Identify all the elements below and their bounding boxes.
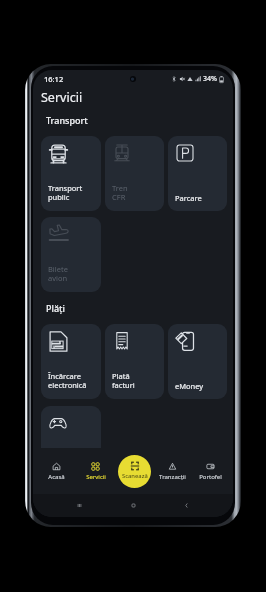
button[interactable]: Plată facturi <box>105 324 164 399</box>
button[interactable]: Transport public <box>41 136 101 211</box>
staticText: Plăți <box>46 302 65 314</box>
staticText: 16:12 <box>44 74 64 84</box>
staticText: Scanează <box>122 472 148 480</box>
staticText: Tren CFR <box>112 183 128 203</box>
button[interactable]: Home <box>126 498 141 513</box>
staticText: Bilete avion <box>48 264 68 284</box>
button[interactable]: Jocuri <box>41 406 101 481</box>
button[interactable]: eMoney <box>168 324 227 399</box>
button[interactable]: Portofel <box>191 448 229 494</box>
staticText: Portofel <box>199 473 222 481</box>
staticText: Încărcare electronică <box>48 371 87 391</box>
staticText: Parcare <box>175 193 202 203</box>
button[interactable]: Back <box>179 498 194 513</box>
staticText: 34% <box>203 74 217 84</box>
staticText: Transport public <box>48 183 83 203</box>
staticText: Jocuri <box>48 463 68 473</box>
staticText: Servicii <box>86 473 106 481</box>
button[interactable]: Parcare <box>168 136 227 211</box>
button[interactable]: Bilete avion <box>41 217 101 292</box>
button[interactable]: Servicii <box>76 448 115 494</box>
button[interactable]: Tranzacții <box>153 448 191 494</box>
staticText: Transport <box>46 114 88 126</box>
staticText: Acasă <box>48 473 65 481</box>
button[interactable]: Recents <box>72 498 87 513</box>
staticText: eMoney <box>175 381 204 391</box>
button[interactable]: Acasă <box>37 448 76 494</box>
staticText: Plată facturi <box>112 371 135 391</box>
button[interactable]: Încărcare electronică <box>41 324 101 399</box>
staticText: Servicii <box>41 89 83 106</box>
button[interactable]: Tren CFR <box>105 136 164 211</box>
button[interactable]: Scanează <box>118 455 151 488</box>
staticText: Tranzacții <box>159 473 186 481</box>
